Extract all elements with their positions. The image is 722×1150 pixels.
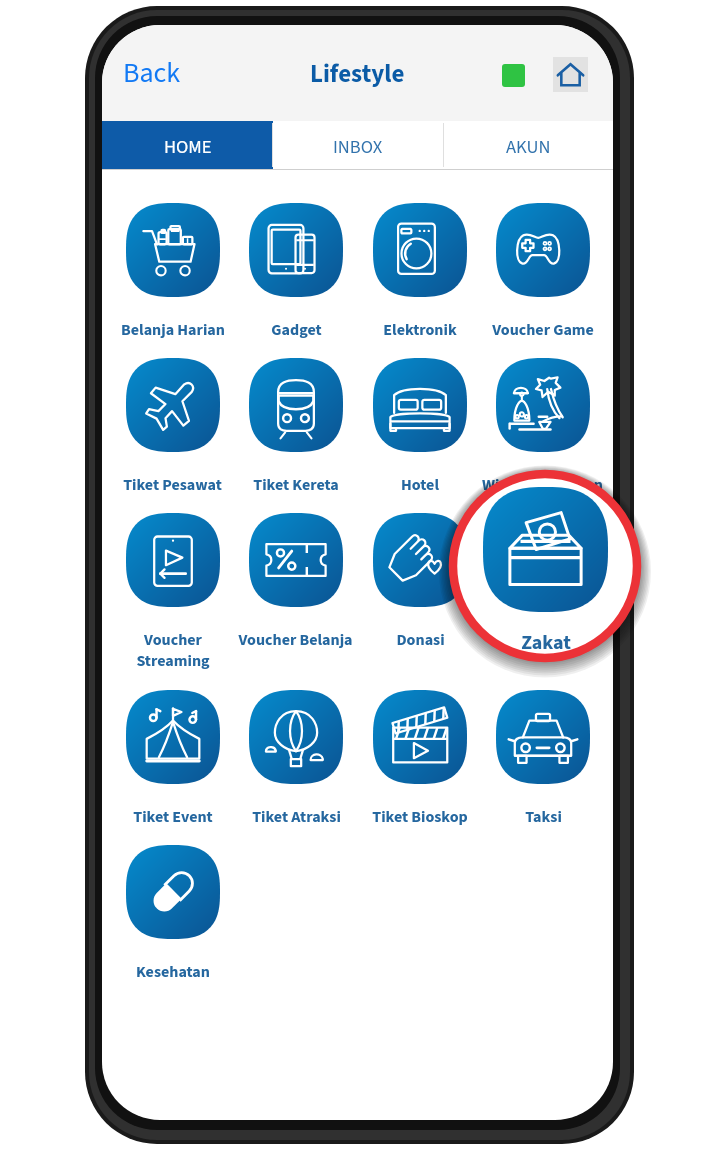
button[interactable]: Status indicator [502,64,525,87]
button[interactable]: Elektronik [358,203,481,358]
staticText: Tiket Bioskop [372,806,468,829]
button[interactable]: Gadget [234,203,357,358]
staticText: AKUN [506,134,551,160]
button[interactable]: Zakat [481,513,604,690]
button[interactable]: Belanja Harian [111,203,234,358]
staticText: Elektronik [383,319,457,342]
button[interactable]: Kesehatan [111,845,234,1000]
button[interactable]: Taksi [481,690,604,845]
staticText: Tiket Kereta [253,474,339,497]
staticText: HOME [164,134,212,160]
staticText: Voucher Game [492,319,594,342]
staticText: Tiket Atraksi [252,806,341,829]
staticText: Tiket Pesawat [123,474,222,497]
button[interactable]: Back [123,53,181,93]
staticText: Zakat [523,629,563,652]
button[interactable]: Donasi [358,513,481,690]
button[interactable]: Voucher Streaming [111,513,234,690]
staticText: Voucher Streaming [136,629,210,673]
staticText: Voucher Belanja [238,629,353,652]
button[interactable]: AKUN [443,121,613,169]
staticText: Kesehatan [136,961,210,984]
button[interactable]: Tiket Atraksi [234,690,357,845]
staticText: Wisata & Hiburan [482,474,603,497]
staticText: Tiket Event [133,806,213,829]
button[interactable]: Tiket Event [111,690,234,845]
staticText: Lifestyle [310,56,405,92]
button[interactable]: Tiket Kereta [234,358,357,513]
button[interactable]: Tiket Bioskop [358,690,481,845]
staticText: Zakat [521,629,571,657]
button[interactable]: Hotel [358,358,481,513]
button[interactable]: Tiket Pesawat [111,358,234,513]
button[interactable]: Voucher Belanja [234,513,357,690]
button[interactable]: Voucher Game [481,203,604,358]
staticText: Gadget [271,319,322,342]
button[interactable]: Zakat [441,462,649,670]
button[interactable]: HOME [102,121,273,169]
staticText: Hotel [401,474,439,497]
button[interactable]: Wisata & Hiburan [481,358,604,513]
staticText: Taksi [525,806,562,829]
staticText: Belanja Harian [121,319,225,342]
button[interactable]: INBOX [273,121,443,169]
staticText: Donasi [396,629,445,652]
staticText: INBOX [333,134,383,160]
button[interactable]: Home [553,57,588,92]
